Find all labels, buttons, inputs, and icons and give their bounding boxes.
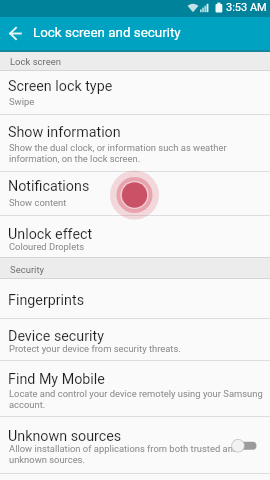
button[interactable] <box>0 17 30 51</box>
staticText: Unlock effect <box>8 226 93 243</box>
staticText: Security <box>10 264 45 275</box>
button[interactable] <box>226 434 262 458</box>
button[interactable]: Unlock effect <box>0 216 270 257</box>
staticText: Notifications <box>8 178 90 195</box>
staticText: 3:53 AM <box>226 1 267 14</box>
staticText: Show information <box>8 124 121 141</box>
staticText: Lock screen <box>10 56 62 67</box>
staticText: Fingerprints <box>8 292 85 309</box>
button[interactable]: Notifications <box>0 171 270 216</box>
button[interactable]: Show information <box>0 115 270 172</box>
button[interactable]: Find My Mobile <box>0 361 270 417</box>
staticText: Show content <box>9 197 67 208</box>
staticText: Device security <box>8 328 104 345</box>
staticText: Lock screen and security <box>33 25 181 41</box>
button[interactable]: Unknown sources <box>0 417 270 474</box>
staticText: Protect your device from security threat… <box>9 343 181 354</box>
staticText: Show the dual clock, or information such… <box>9 142 227 165</box>
staticText: Coloured Droplets <box>9 241 85 252</box>
staticText: Screen lock type <box>8 78 113 95</box>
staticText: Allow installation of applications from … <box>9 443 239 466</box>
button[interactable]: Fingerprints <box>0 279 270 319</box>
button[interactable]: Screen lock type <box>0 71 270 115</box>
staticText: Find My Mobile <box>8 371 105 388</box>
staticText: Unknown sources <box>8 428 122 445</box>
button[interactable]: Device security <box>0 319 270 361</box>
staticText: Swipe <box>9 96 35 107</box>
staticText: Locate and control your device remotely … <box>9 388 263 411</box>
